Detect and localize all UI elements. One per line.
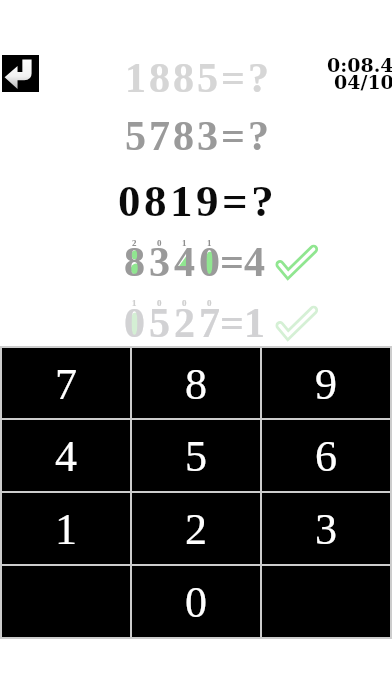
button[interactable]: 2: [132, 493, 260, 564]
staticText: 0819=?: [118, 176, 278, 226]
staticText: 2: [132, 238, 137, 248]
staticText: 0: [124, 300, 145, 347]
button[interactable]: 5: [132, 420, 260, 491]
button[interactable]: 1: [2, 493, 130, 564]
staticText: 1885=?: [125, 55, 272, 102]
staticText: 1: [132, 298, 137, 308]
staticText: 04/10: [334, 71, 392, 93]
staticText: 9: [315, 360, 337, 409]
staticText: 0: [182, 298, 187, 308]
staticText: 0: [157, 298, 162, 308]
staticText: 0: [199, 239, 220, 286]
staticText: 2: [174, 300, 195, 347]
staticText: =4: [220, 239, 265, 286]
staticText: 4: [55, 432, 77, 481]
button[interactable]: 3: [262, 493, 390, 564]
staticText: 1: [55, 505, 77, 554]
staticText: 7: [199, 300, 220, 347]
staticText: 5: [149, 300, 170, 347]
staticText: 7: [55, 360, 77, 409]
staticText: 2: [185, 505, 207, 554]
button[interactable]: 9: [262, 348, 390, 418]
staticText: 4: [174, 239, 195, 286]
staticText: 0: [207, 298, 212, 308]
button[interactable]: 4: [2, 420, 130, 491]
staticText: 0:08.4: [327, 54, 392, 76]
staticText: 0: [157, 238, 162, 248]
staticText: 5783=?: [125, 113, 272, 160]
staticText: 0: [185, 578, 207, 627]
staticText: 5: [185, 432, 207, 481]
staticText: 3: [315, 505, 337, 554]
button[interactable]: 6: [262, 420, 390, 491]
staticText: 3: [149, 239, 170, 286]
button[interactable]: [2, 55, 39, 92]
button[interactable]: 0: [132, 566, 260, 637]
staticText: 6: [315, 432, 337, 481]
button[interactable]: 7: [2, 348, 130, 418]
staticText: 1: [182, 238, 187, 248]
staticText: =1: [220, 300, 265, 347]
staticText: 1: [207, 238, 212, 248]
staticText: 8: [185, 360, 207, 409]
staticText: 8: [124, 239, 145, 286]
button[interactable]: 8: [132, 348, 260, 418]
